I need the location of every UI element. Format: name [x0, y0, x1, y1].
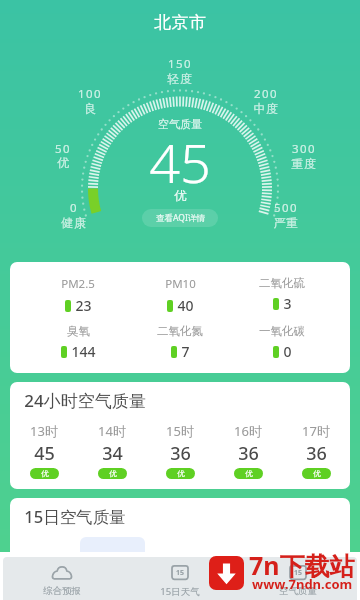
staticText: 查看AQI详情 [156, 212, 205, 224]
staticText: 23 [75, 296, 92, 315]
staticText: 3 [283, 294, 292, 313]
button[interactable]: 15 [121, 557, 239, 600]
staticText: 36 [170, 441, 191, 466]
staticText: 0 [70, 200, 78, 216]
staticText: 200 [254, 86, 278, 102]
staticText: 15 [294, 568, 303, 578]
staticText: 优 [245, 469, 253, 478]
staticText: 15 [176, 568, 185, 578]
button[interactable]: 综合预报 [3, 557, 121, 600]
staticText: 0 [283, 342, 292, 361]
button[interactable]: 查看AQI详情 [142, 209, 218, 227]
staticText: 100 [78, 86, 102, 102]
staticText: 14时 [98, 422, 126, 440]
staticText: 15时 [166, 422, 194, 440]
staticText: 36 [306, 441, 327, 466]
staticText: 优 [174, 188, 187, 204]
staticText: www.7ndn.com [252, 575, 353, 593]
staticText: 二氧化氮 [157, 324, 203, 338]
staticText: 7n下载站 [249, 548, 355, 582]
staticText: 优 [109, 469, 117, 478]
staticText: 重度 [291, 156, 317, 171]
staticText: 45 [34, 441, 55, 466]
staticText: 50 [55, 141, 71, 157]
staticText: 优 [177, 469, 185, 478]
staticText: 45 [149, 125, 211, 199]
staticText: 500 [274, 200, 298, 216]
staticText: 北京市 [154, 12, 207, 33]
staticText: 二氧化硫 [259, 276, 305, 290]
button[interactable]: 15 [239, 557, 357, 600]
staticText: 13时 [30, 422, 58, 440]
staticText: 轻度 [167, 71, 193, 86]
staticText: 150 [168, 56, 192, 72]
staticText: 优 [41, 469, 49, 478]
staticText: 7 [181, 342, 190, 361]
staticText: 16时 [234, 422, 262, 440]
staticText: 17时 [302, 422, 330, 440]
staticText: 良 [84, 101, 97, 116]
staticText: 空气质量 [279, 585, 317, 597]
staticText: 36 [238, 441, 259, 466]
staticText: 综合预报 [43, 585, 81, 597]
staticText: 40 [177, 296, 194, 315]
staticText: 严重 [273, 215, 299, 230]
staticText: 24小时空气质量 [24, 389, 146, 412]
staticText: 中度 [253, 101, 279, 116]
staticText: 空气质量 [158, 117, 202, 131]
staticText: 15日空气质量 [24, 505, 126, 528]
staticText: PM10 [165, 276, 196, 292]
staticText: 健康 [61, 215, 87, 230]
staticText: PM2.5 [61, 276, 95, 292]
staticText: 15日天气 [160, 585, 200, 598]
staticText: 优 [313, 469, 321, 478]
staticText: 300 [292, 141, 316, 157]
staticText: 臭氧 [67, 324, 90, 338]
staticText: 一氧化碳 [259, 324, 305, 338]
staticText: 34 [102, 441, 123, 466]
staticText: 144 [71, 342, 96, 361]
staticText: 优 [57, 155, 70, 170]
